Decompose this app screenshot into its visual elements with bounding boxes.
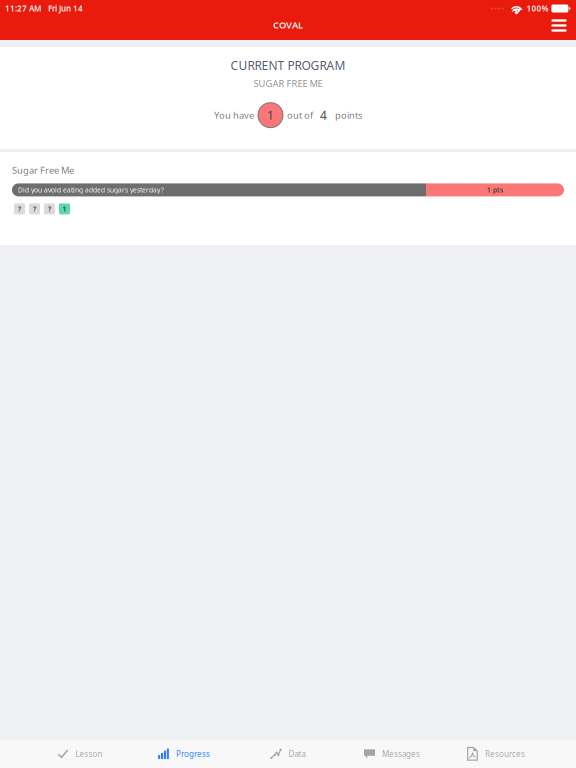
staticText: You have bbox=[214, 109, 254, 121]
button[interactable]: Data bbox=[236, 740, 340, 768]
button[interactable]: Lesson bbox=[28, 740, 132, 768]
staticText: SUGAR FREE ME bbox=[253, 77, 322, 90]
staticText: Sugar Free Me bbox=[12, 164, 74, 176]
staticText: 100% bbox=[526, 3, 548, 14]
staticText: ? bbox=[48, 204, 51, 213]
staticText: COVAL bbox=[273, 19, 303, 31]
staticText: 1 pts bbox=[487, 185, 503, 194]
staticText: Messages bbox=[382, 748, 420, 759]
staticText: CURRENT PROGRAM bbox=[230, 57, 345, 73]
staticText: 1 bbox=[267, 107, 274, 123]
staticText: Data bbox=[288, 748, 305, 759]
staticText: 11:27 AM bbox=[5, 3, 41, 14]
button[interactable]: Menu bbox=[542, 17, 576, 40]
staticText: Lesson bbox=[75, 748, 102, 759]
staticText: Resources bbox=[485, 748, 525, 759]
staticText: ? bbox=[18, 204, 21, 213]
staticText: out of bbox=[287, 109, 313, 121]
staticText: Progress bbox=[176, 748, 210, 759]
staticText: 1 bbox=[62, 204, 66, 213]
button[interactable]: Resources bbox=[444, 740, 548, 768]
staticText: Did you avoid eating added sugars yester… bbox=[18, 185, 164, 194]
staticText: ? bbox=[33, 204, 36, 213]
staticText: Fri Jun 14 bbox=[48, 3, 83, 14]
button[interactable]: Messages bbox=[340, 740, 444, 768]
button[interactable]: Progress bbox=[132, 740, 236, 768]
staticText: points bbox=[335, 109, 362, 121]
staticText: 4 bbox=[320, 107, 327, 123]
